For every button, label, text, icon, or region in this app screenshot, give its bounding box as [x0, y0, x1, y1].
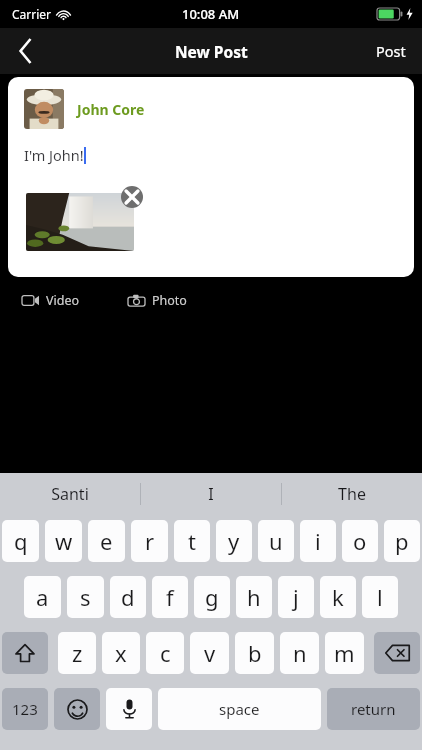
- staticText: w: [55, 526, 73, 556]
- staticText: l: [377, 582, 383, 612]
- button[interactable]: Dictation: [106, 688, 152, 730]
- button[interactable]: l: [362, 576, 398, 618]
- button[interactable]: z: [58, 632, 96, 674]
- staticText: New Post: [175, 41, 248, 62]
- staticText: z: [72, 638, 83, 668]
- staticText: g: [205, 582, 219, 612]
- staticText: j: [293, 582, 299, 612]
- button[interactable]: p: [384, 520, 420, 562]
- staticText: The: [338, 483, 366, 505]
- button[interactable]: Photo: [122, 286, 193, 315]
- staticText: x: [115, 638, 127, 668]
- button[interactable]: i: [300, 520, 336, 562]
- staticText: John Core: [77, 100, 145, 119]
- button[interactable]: Video: [16, 286, 86, 315]
- button[interactable]: r: [131, 520, 168, 562]
- staticText: Post: [376, 41, 406, 61]
- button[interactable]: t: [174, 520, 210, 562]
- button[interactable]: d: [110, 576, 146, 618]
- button[interactable]: c: [146, 632, 184, 674]
- button[interactable]: m: [325, 632, 364, 674]
- staticText: p: [395, 526, 409, 556]
- staticText: o: [353, 526, 367, 556]
- staticText: space: [219, 699, 260, 719]
- button[interactable]: w: [45, 520, 82, 562]
- staticText: d: [121, 582, 135, 612]
- button[interactable]: v: [190, 632, 229, 674]
- staticText: h: [247, 582, 261, 612]
- button[interactable]: u: [258, 520, 294, 562]
- button[interactable]: k: [320, 576, 356, 618]
- button[interactable]: Remove photo: [120, 185, 144, 209]
- button[interactable]: I: [141, 473, 281, 515]
- staticText: I'm John!: [24, 145, 84, 165]
- button[interactable]: Attached photo: [26, 193, 134, 251]
- button[interactable]: n: [280, 632, 319, 674]
- button[interactable]: g: [194, 576, 230, 618]
- button[interactable]: j: [278, 576, 314, 618]
- staticText: v: [204, 638, 216, 668]
- staticText: f: [166, 582, 174, 612]
- button[interactable]: space: [158, 688, 321, 730]
- staticText: u: [269, 526, 283, 556]
- button[interactable]: e: [88, 520, 125, 562]
- button[interactable]: Backspace: [374, 632, 420, 674]
- staticText: a: [36, 582, 49, 612]
- button[interactable]: Emoji: [54, 688, 100, 730]
- button[interactable]: Shift: [2, 632, 48, 674]
- staticText: return: [351, 699, 396, 719]
- button[interactable]: 123: [2, 688, 48, 730]
- staticText: I: [208, 483, 214, 505]
- button[interactable]: h: [236, 576, 272, 618]
- staticText: k: [332, 582, 344, 612]
- staticText: q: [14, 526, 28, 556]
- staticText: s: [80, 582, 91, 612]
- staticText: e: [100, 526, 113, 556]
- button[interactable]: Santi: [0, 473, 140, 515]
- button[interactable]: s: [67, 576, 104, 618]
- staticText: c: [160, 638, 171, 668]
- button[interactable]: a: [24, 576, 61, 618]
- button[interactable]: b: [235, 632, 274, 674]
- button[interactable]: The: [282, 473, 422, 515]
- staticText: Video: [46, 292, 80, 309]
- staticText: 10:08 AM: [182, 5, 240, 23]
- staticText: t: [188, 526, 196, 556]
- button[interactable]: q: [2, 520, 39, 562]
- button[interactable]: y: [216, 520, 252, 562]
- staticText: y: [228, 526, 240, 556]
- staticText: r: [145, 526, 155, 556]
- staticText: m: [334, 638, 355, 668]
- staticText: 123: [12, 699, 38, 719]
- button[interactable]: return: [327, 688, 420, 730]
- button[interactable]: x: [102, 632, 140, 674]
- staticText: i: [315, 526, 321, 556]
- button[interactable]: Back: [0, 28, 50, 74]
- button[interactable]: Post: [360, 28, 422, 74]
- button[interactable]: Profile photo: [24, 89, 64, 129]
- staticText: b: [248, 638, 262, 668]
- button[interactable]: o: [342, 520, 378, 562]
- button[interactable]: f: [152, 576, 188, 618]
- staticText: n: [293, 638, 307, 668]
- staticText: Santi: [51, 483, 89, 505]
- staticText: Photo: [152, 292, 187, 309]
- staticText: Carrier: [12, 6, 52, 22]
